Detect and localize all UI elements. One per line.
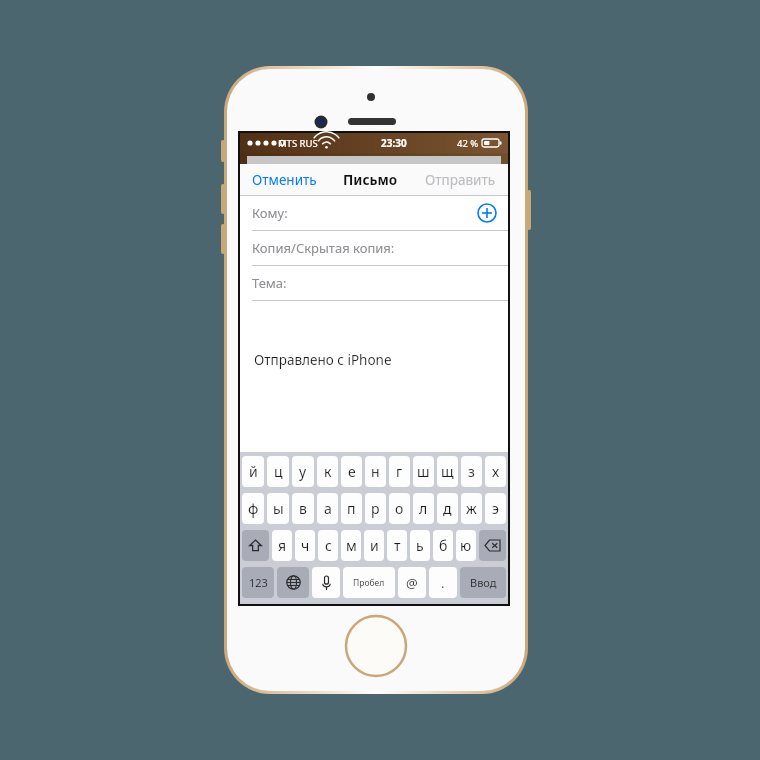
- staticText: Тема:: [252, 274, 287, 292]
- staticText: ц: [274, 462, 283, 481]
- button[interactable]: в: [292, 493, 314, 524]
- button[interactable]: р: [365, 493, 386, 524]
- button[interactable]: м: [341, 530, 361, 561]
- button[interactable]: т: [387, 530, 407, 561]
- staticText: 42 %: [457, 137, 479, 150]
- button[interactable]: ф: [242, 493, 264, 524]
- button[interactable]: я: [272, 530, 292, 561]
- staticText: ж: [466, 499, 477, 518]
- staticText: Отправить: [425, 171, 496, 189]
- button[interactable]: ш: [413, 456, 434, 487]
- staticText: Пробел: [353, 577, 385, 589]
- button[interactable]: г: [389, 456, 410, 487]
- staticText: н: [371, 462, 380, 481]
- staticText: п: [347, 499, 356, 518]
- button[interactable]: ж: [461, 493, 482, 524]
- staticText: е: [348, 462, 356, 481]
- staticText: я: [278, 536, 287, 555]
- button[interactable]: ь: [410, 530, 430, 561]
- button[interactable]: н: [365, 456, 386, 487]
- staticText: в: [299, 499, 307, 518]
- staticText: г: [396, 462, 403, 481]
- button[interactable]: а: [317, 493, 338, 524]
- staticText: с: [325, 536, 332, 555]
- staticText: м: [346, 536, 357, 555]
- button[interactable]: ю: [456, 530, 476, 561]
- staticText: л: [419, 499, 428, 518]
- staticText: и: [370, 536, 379, 555]
- staticText: а: [324, 499, 332, 518]
- staticText: х: [492, 462, 500, 481]
- staticText: Отправлено с iPhone: [254, 351, 392, 369]
- button[interactable]: п: [341, 493, 362, 524]
- button[interactable]: э: [485, 493, 506, 524]
- button[interactable]: к: [317, 456, 338, 487]
- button[interactable]: Dictate: [312, 567, 340, 598]
- button[interactable]: ч: [295, 530, 315, 561]
- staticText: у: [299, 462, 307, 481]
- button[interactable]: .: [429, 567, 457, 598]
- button[interactable]: з: [461, 456, 482, 487]
- button[interactable]: о: [389, 493, 410, 524]
- button[interactable]: и: [364, 530, 384, 561]
- staticText: э: [492, 499, 499, 518]
- button[interactable]: с: [318, 530, 338, 561]
- staticText: ш: [417, 462, 430, 481]
- button[interactable]: Тема:: [240, 266, 508, 300]
- button[interactable]: Пробел: [343, 567, 395, 598]
- button[interactable]: е: [341, 456, 362, 487]
- staticText: Копия/Скрытая копия:: [252, 239, 395, 257]
- staticText: ы: [273, 499, 284, 518]
- staticText: т: [394, 536, 401, 555]
- button[interactable]: б: [433, 530, 453, 561]
- button[interactable]: ц: [267, 456, 289, 487]
- button[interactable]: ы: [267, 493, 289, 524]
- button[interactable]: Numbers: [242, 567, 274, 598]
- button[interactable]: Backspace: [479, 530, 506, 561]
- button[interactable]: у: [292, 456, 314, 487]
- staticText: MTS RUS: [278, 137, 318, 150]
- staticText: ю: [460, 536, 472, 555]
- button[interactable]: Кому:: [240, 196, 508, 230]
- button[interactable]: й: [242, 456, 264, 487]
- button[interactable]: @: [398, 567, 426, 598]
- button[interactable]: л: [413, 493, 434, 524]
- staticText: д: [443, 499, 452, 518]
- staticText: .: [441, 574, 445, 592]
- staticText: ь: [416, 536, 424, 555]
- button[interactable]: Отправить: [423, 167, 498, 193]
- staticText: Ввод: [470, 575, 497, 590]
- button[interactable]: Shift: [242, 530, 269, 561]
- staticText: к: [324, 462, 332, 481]
- button[interactable]: Ввод: [460, 567, 506, 598]
- staticText: о: [395, 499, 404, 518]
- button[interactable]: д: [437, 493, 458, 524]
- button[interactable]: х: [485, 456, 506, 487]
- staticText: ф: [248, 499, 259, 518]
- staticText: р: [371, 499, 380, 518]
- button[interactable]: щ: [437, 456, 458, 487]
- staticText: з: [468, 462, 475, 481]
- staticText: щ: [441, 462, 454, 481]
- staticText: @: [406, 574, 418, 592]
- staticText: 23:30: [381, 136, 407, 150]
- button[interactable]: Add recipient: [476, 202, 498, 224]
- staticText: Кому:: [252, 204, 288, 222]
- button[interactable]: Change keyboard: [277, 567, 309, 598]
- staticText: б: [439, 536, 448, 555]
- staticText: й: [249, 462, 258, 481]
- staticText: ч: [301, 536, 310, 555]
- staticText: 123: [249, 575, 268, 590]
- button[interactable]: Копия/Скрытая копия:: [240, 231, 508, 265]
- staticText: Письмо: [343, 171, 398, 189]
- button[interactable]: Отменить: [250, 167, 319, 193]
- staticText: Отменить: [252, 171, 317, 189]
